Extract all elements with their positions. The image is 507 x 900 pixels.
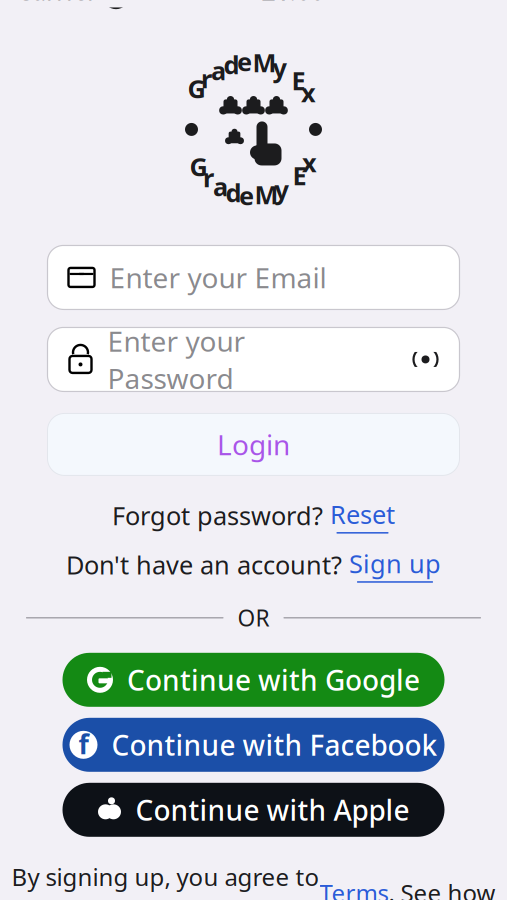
button[interactable]: Don't have an account?	[66, 547, 441, 583]
staticText: M	[254, 178, 278, 211]
staticText: Enter your Password	[107, 322, 245, 397]
button[interactable]: Continue with Apple	[62, 783, 444, 837]
staticText: x	[302, 146, 317, 179]
staticText: a	[213, 170, 228, 203]
staticText: x	[301, 76, 316, 109]
staticText: 21:00	[261, 0, 324, 7]
staticText: Sign up	[349, 547, 441, 580]
staticText: Reset	[330, 497, 395, 531]
button[interactable]: Login	[47, 413, 459, 475]
staticText: Terms	[319, 877, 388, 900]
staticText: y	[274, 173, 288, 206]
staticText: r	[201, 62, 212, 95]
staticText: e	[237, 45, 252, 78]
staticText: By signing up, you agree to our	[11, 861, 319, 900]
staticText: E	[292, 159, 306, 192]
staticText: Enter your Email	[109, 259, 326, 296]
staticText: E	[291, 64, 305, 97]
staticText: d	[225, 176, 241, 209]
staticText: M	[252, 46, 276, 79]
button[interactable]: Continue with Google	[62, 653, 444, 707]
staticText: OR	[237, 603, 269, 633]
staticText: r	[203, 161, 214, 194]
staticText: Forgot password?	[112, 499, 323, 532]
button[interactable]: Forgot password?	[112, 497, 395, 533]
staticText: Don't have an account?	[66, 548, 342, 581]
staticText: Continue with Google	[127, 661, 420, 698]
button[interactable]: f	[62, 718, 444, 772]
staticText: . See how	[388, 877, 495, 900]
staticText: G	[189, 150, 207, 183]
staticText: e	[239, 179, 254, 212]
staticText: G	[187, 72, 205, 105]
staticText: Continue with Facebook	[111, 726, 437, 763]
staticText: d	[223, 48, 239, 81]
staticText: f	[78, 726, 88, 761]
staticText: a	[211, 54, 226, 87]
staticText: Carrier	[16, 0, 97, 7]
staticText: Login	[217, 426, 290, 463]
button[interactable]: Show password	[411, 349, 439, 369]
staticText: Continue with Apple	[135, 791, 409, 828]
staticText: y	[272, 51, 286, 84]
